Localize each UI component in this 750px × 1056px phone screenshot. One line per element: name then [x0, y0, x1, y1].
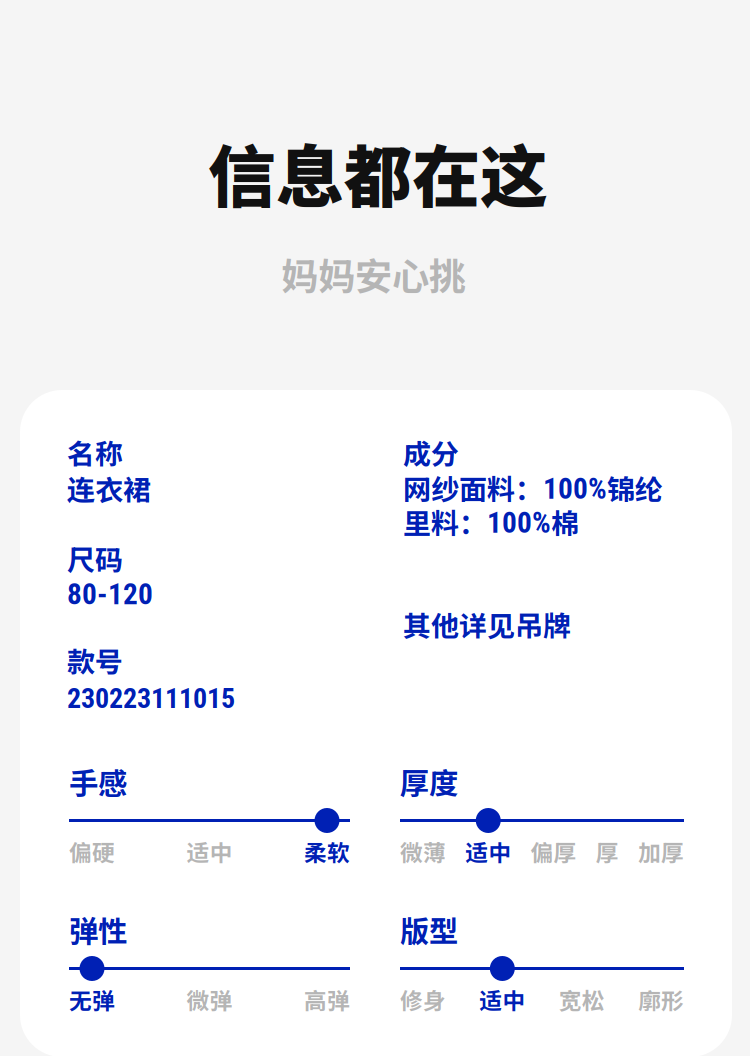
staticText: 网纱面料：100%锦纶: [403, 468, 663, 507]
staticText: 修身: [400, 983, 446, 1016]
staticText: 信息都在这: [208, 123, 548, 221]
staticText: 柔软: [304, 835, 350, 868]
staticText: 适中: [186, 835, 232, 868]
staticText: 厚度: [400, 760, 458, 802]
staticText: 适中: [479, 983, 525, 1016]
staticText: 厚: [596, 835, 619, 868]
staticText: 版型: [400, 908, 458, 950]
staticText: 无弹: [69, 983, 115, 1016]
staticText: 廓形: [638, 983, 684, 1016]
staticText: 加厚: [638, 835, 684, 868]
staticText: 高弹: [304, 983, 350, 1016]
staticText: 连衣裙: [67, 468, 151, 508]
staticText: 名称: [67, 432, 123, 472]
button[interactable]: 版型：适中: [400, 956, 684, 981]
staticText: 适中: [465, 835, 511, 868]
staticText: 妈妈安心挑: [281, 247, 466, 301]
staticText: 里料：100%棉: [403, 502, 579, 541]
staticText: 微薄: [400, 835, 446, 868]
staticText: 宽松: [559, 983, 605, 1016]
button[interactable]: 手感：柔软: [69, 808, 350, 833]
staticText: 80-120: [67, 577, 153, 611]
button[interactable]: 厚度：适中: [400, 808, 684, 833]
staticText: 手感: [69, 760, 127, 802]
button[interactable]: 弹性：无弹: [69, 956, 350, 981]
staticText: 尺码: [67, 538, 123, 578]
staticText: 偏厚: [530, 835, 576, 868]
staticText: 成分: [403, 432, 459, 472]
staticText: 偏硬: [69, 835, 115, 868]
staticText: 其他详见吊牌: [403, 604, 571, 644]
staticText: 230223111015: [67, 682, 235, 715]
staticText: 弹性: [69, 908, 127, 950]
staticText: 微弹: [186, 983, 232, 1016]
staticText: 款号: [67, 640, 123, 680]
